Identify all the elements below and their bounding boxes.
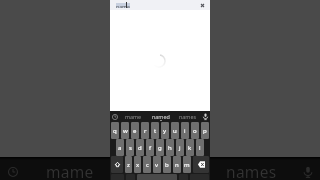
button[interactable]: z [125,156,132,173]
staticText: n [175,161,179,169]
staticText: c [146,161,149,169]
button[interactable]: named [147,111,174,122]
button[interactable]: k [186,139,194,156]
staticText: mame [46,161,94,180]
button[interactable]: g [156,139,164,156]
staticText: f [149,144,152,152]
staticText: y [163,127,167,135]
staticText: h [168,144,172,152]
button[interactable]: y [161,122,169,139]
button[interactable]: Voice search [296,157,320,180]
staticText: named [134,161,187,180]
staticText: o [193,127,197,135]
button[interactable]: w [121,122,129,139]
button[interactable]: r [141,122,149,139]
staticText: named [152,113,170,120]
staticText: mame [125,113,142,120]
button[interactable]: t [151,122,159,139]
staticText: d [138,144,142,152]
staticText: v [155,161,159,169]
staticText: u [173,127,177,135]
staticText: k [188,144,192,152]
button[interactable]: mame [25,157,115,180]
button[interactable]: Search history [0,157,25,180]
button[interactable]: Shift [111,156,123,173]
staticText: names [179,113,197,120]
staticText: r [144,127,147,135]
button[interactable]: u [171,122,179,139]
staticText: t [154,127,157,135]
button[interactable]: Search history [110,111,120,122]
staticText: b [165,161,169,169]
staticText: x [136,161,140,169]
button[interactable]: Backspace [193,156,209,173]
button[interactable]: o [191,122,199,139]
staticText: l [199,144,201,152]
staticText: names [226,161,277,180]
button[interactable]: names [206,157,296,180]
button[interactable]: p [201,122,209,139]
button[interactable]: Voice input [201,111,210,122]
button[interactable]: m [183,156,191,173]
button[interactable]: e [131,122,139,139]
button[interactable]: c [143,156,151,173]
staticText: name [116,3,130,8]
button[interactable]: f [146,139,154,156]
staticText: m [184,161,190,169]
staticText: i [184,127,186,135]
button[interactable]: q [111,122,119,139]
staticText: w [123,127,128,135]
button[interactable]: s [126,139,134,156]
staticText: a [118,144,122,152]
button[interactable]: Clear search [198,0,207,10]
button[interactable]: b [163,156,171,173]
button[interactable]: a [116,139,124,156]
button[interactable]: d [136,139,144,156]
staticText: g [158,144,162,152]
button[interactable]: n [173,156,181,173]
button[interactable]: i [181,122,189,139]
button[interactable]: names [174,111,201,122]
button[interactable]: named [115,157,206,180]
button[interactable]: v [153,156,161,173]
button[interactable]: j [176,139,184,156]
staticText: z [127,161,130,169]
button[interactable]: l [196,139,204,156]
staticText: e [133,127,137,135]
staticText: j [179,144,181,152]
button[interactable]: x [134,156,141,173]
button[interactable]: h [166,139,174,156]
staticText: p [203,127,207,135]
button[interactable]: mame [120,111,147,122]
staticText: s [129,144,132,152]
staticText: q [113,127,117,135]
